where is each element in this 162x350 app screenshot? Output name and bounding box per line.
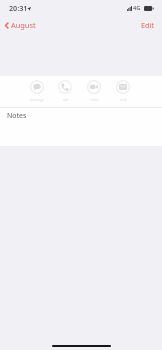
button[interactable]: mail	[108, 76, 138, 102]
button[interactable]: call	[50, 76, 80, 102]
staticText: mail	[120, 98, 127, 102]
staticText: Notes	[7, 111, 27, 121]
staticText: Edit	[141, 20, 155, 30]
staticText: 20:31	[9, 3, 28, 13]
button[interactable]: video	[79, 76, 109, 102]
button[interactable]: Notes	[0, 108, 162, 146]
staticText: message	[30, 98, 44, 102]
button[interactable]: message	[22, 76, 52, 102]
button[interactable]: Edit	[133, 17, 162, 33]
staticText: video	[90, 98, 99, 102]
staticText: August	[11, 20, 36, 30]
staticText: call	[63, 98, 68, 102]
button[interactable]: August	[0, 17, 42, 33]
staticText: 4G	[133, 4, 141, 12]
